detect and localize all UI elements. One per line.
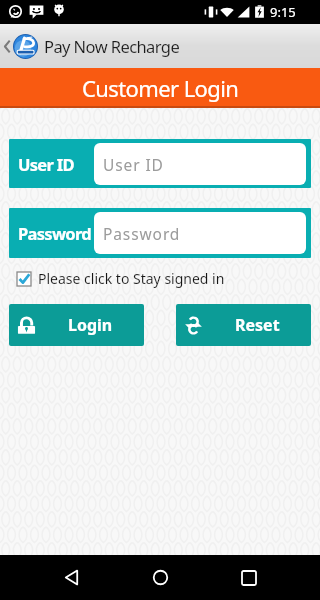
staticText: User ID [103,154,164,175]
staticText: Pay Now Recharge [44,35,180,57]
button[interactable]: User ID [9,139,311,188]
staticText: Customer Login [82,73,239,103]
staticText: User ID [18,153,74,175]
button[interactable]: Password [9,208,311,258]
staticText: Reset [235,314,280,336]
staticText: Password [103,223,181,244]
staticText: Password [18,222,92,244]
button[interactable]: Back [46,555,97,600]
button[interactable]: Home [135,555,186,600]
button[interactable]: Back [1,24,13,68]
button[interactable]: Login [9,304,144,346]
button[interactable]: Recent apps [223,555,274,600]
button[interactable]: Please click to Stay signed in [17,269,225,288]
staticText: Please click to Stay signed in [38,269,225,288]
staticText: Login [68,314,113,336]
staticText: 9:15 [270,3,296,21]
button[interactable]: Reset [176,304,311,346]
